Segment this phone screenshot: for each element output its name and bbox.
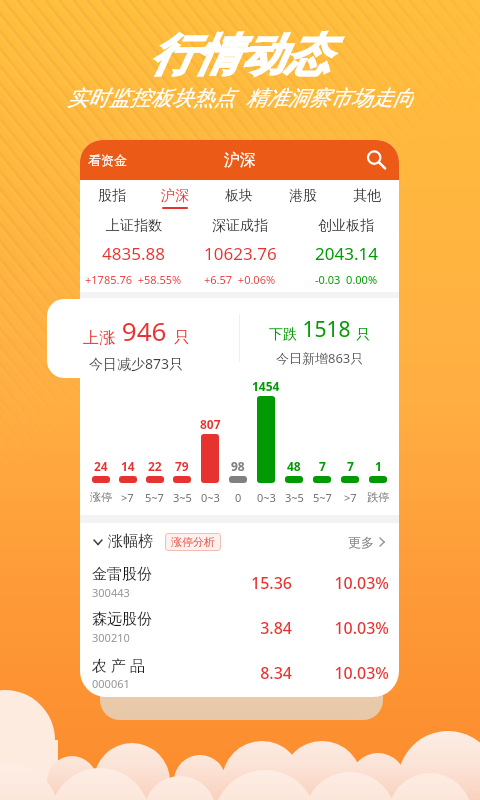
staticText: 946	[115, 313, 174, 348]
button[interactable]: Search	[361, 145, 391, 175]
button[interactable]: 农 产 品	[80, 650, 399, 695]
staticText: 板块	[225, 187, 253, 205]
staticText: 7	[319, 458, 326, 474]
staticText: 创业板指	[318, 217, 374, 235]
staticText: 港股	[289, 187, 317, 205]
staticText: 上涨	[83, 328, 115, 348]
button[interactable]: 涨幅榜	[80, 523, 399, 560]
staticText: 涨幅榜	[108, 532, 153, 551]
staticText: 8.34	[230, 662, 292, 684]
staticText: 1454	[252, 378, 280, 394]
staticText: 000061	[92, 676, 130, 691]
staticText: 下跌	[269, 326, 297, 344]
staticText: 98	[231, 458, 245, 474]
button[interactable]: 涨停分析	[165, 533, 221, 551]
staticText: 14	[121, 458, 135, 474]
staticText: 807	[200, 416, 221, 432]
staticText: 15.36	[230, 572, 292, 594]
staticText: 上证指数	[106, 217, 162, 235]
staticText: 看资金	[88, 152, 127, 168]
staticText: 农 产 品	[92, 655, 145, 675]
staticText: 48	[287, 458, 301, 474]
staticText: 5~7	[145, 490, 164, 505]
button[interactable]: 森远股份	[80, 605, 399, 650]
staticText: +1785.76 +58.55%	[85, 272, 182, 287]
staticText: 4835.88	[102, 242, 165, 265]
staticText: 行情动态	[150, 28, 330, 83]
staticText: 沪深	[161, 187, 189, 205]
staticText: 0~3	[257, 490, 276, 505]
staticText: 0	[235, 490, 242, 505]
staticText: 10.03%	[317, 572, 389, 594]
staticText: 今日减少873只	[89, 354, 184, 373]
button[interactable]: 股指	[80, 180, 143, 211]
staticText: 更多	[348, 534, 374, 550]
staticText: 22	[148, 458, 162, 474]
staticText: 5~7	[313, 490, 332, 505]
staticText: -0.03 0.00%	[315, 272, 378, 287]
button[interactable]: 沪深	[143, 180, 207, 211]
staticText: 1518	[297, 315, 356, 344]
staticText: 10.03%	[317, 617, 389, 639]
button[interactable]: 上涨	[47, 299, 225, 378]
staticText: 深证成指	[212, 217, 268, 235]
staticText: 跌停	[367, 490, 389, 504]
staticText: 3~5	[173, 490, 192, 505]
staticText: 10623.76	[204, 242, 277, 265]
staticText: 10.03%	[317, 662, 389, 684]
staticText: 沪深	[224, 150, 256, 170]
staticText: 只	[174, 328, 190, 348]
button[interactable]: 板块	[207, 180, 271, 211]
staticText: 股指	[98, 187, 126, 205]
staticText: >7	[344, 490, 357, 505]
button[interactable]: 其他	[335, 180, 399, 211]
staticText: >7	[121, 490, 134, 505]
staticText: 24	[94, 458, 108, 474]
staticText: 3~5	[285, 490, 304, 505]
staticText: 3.84	[230, 617, 292, 639]
staticText: +6.57 +0.06%	[204, 272, 276, 287]
staticText: 涨停	[90, 490, 112, 504]
button[interactable]: 金雷股份	[80, 560, 399, 605]
staticText: 79	[175, 458, 189, 474]
staticText: 1	[375, 458, 382, 474]
staticText: 森远股份	[92, 610, 152, 629]
staticText: 实时监控板块热点 精准洞察市场走向	[67, 83, 414, 111]
staticText: 2043.14	[315, 242, 378, 265]
staticText: 300443	[92, 585, 130, 600]
staticText: 只	[356, 326, 370, 344]
staticText: 7	[347, 458, 354, 474]
staticText: 今日新增863只	[276, 349, 364, 367]
button[interactable]: 港股	[271, 180, 335, 211]
staticText: 其他	[353, 187, 381, 205]
staticText: 涨停分析	[171, 535, 215, 549]
staticText: 金雷股份	[92, 565, 152, 584]
staticText: 300210	[92, 630, 130, 645]
staticText: 0~3	[201, 490, 220, 505]
button[interactable]: 看资金	[80, 144, 139, 176]
